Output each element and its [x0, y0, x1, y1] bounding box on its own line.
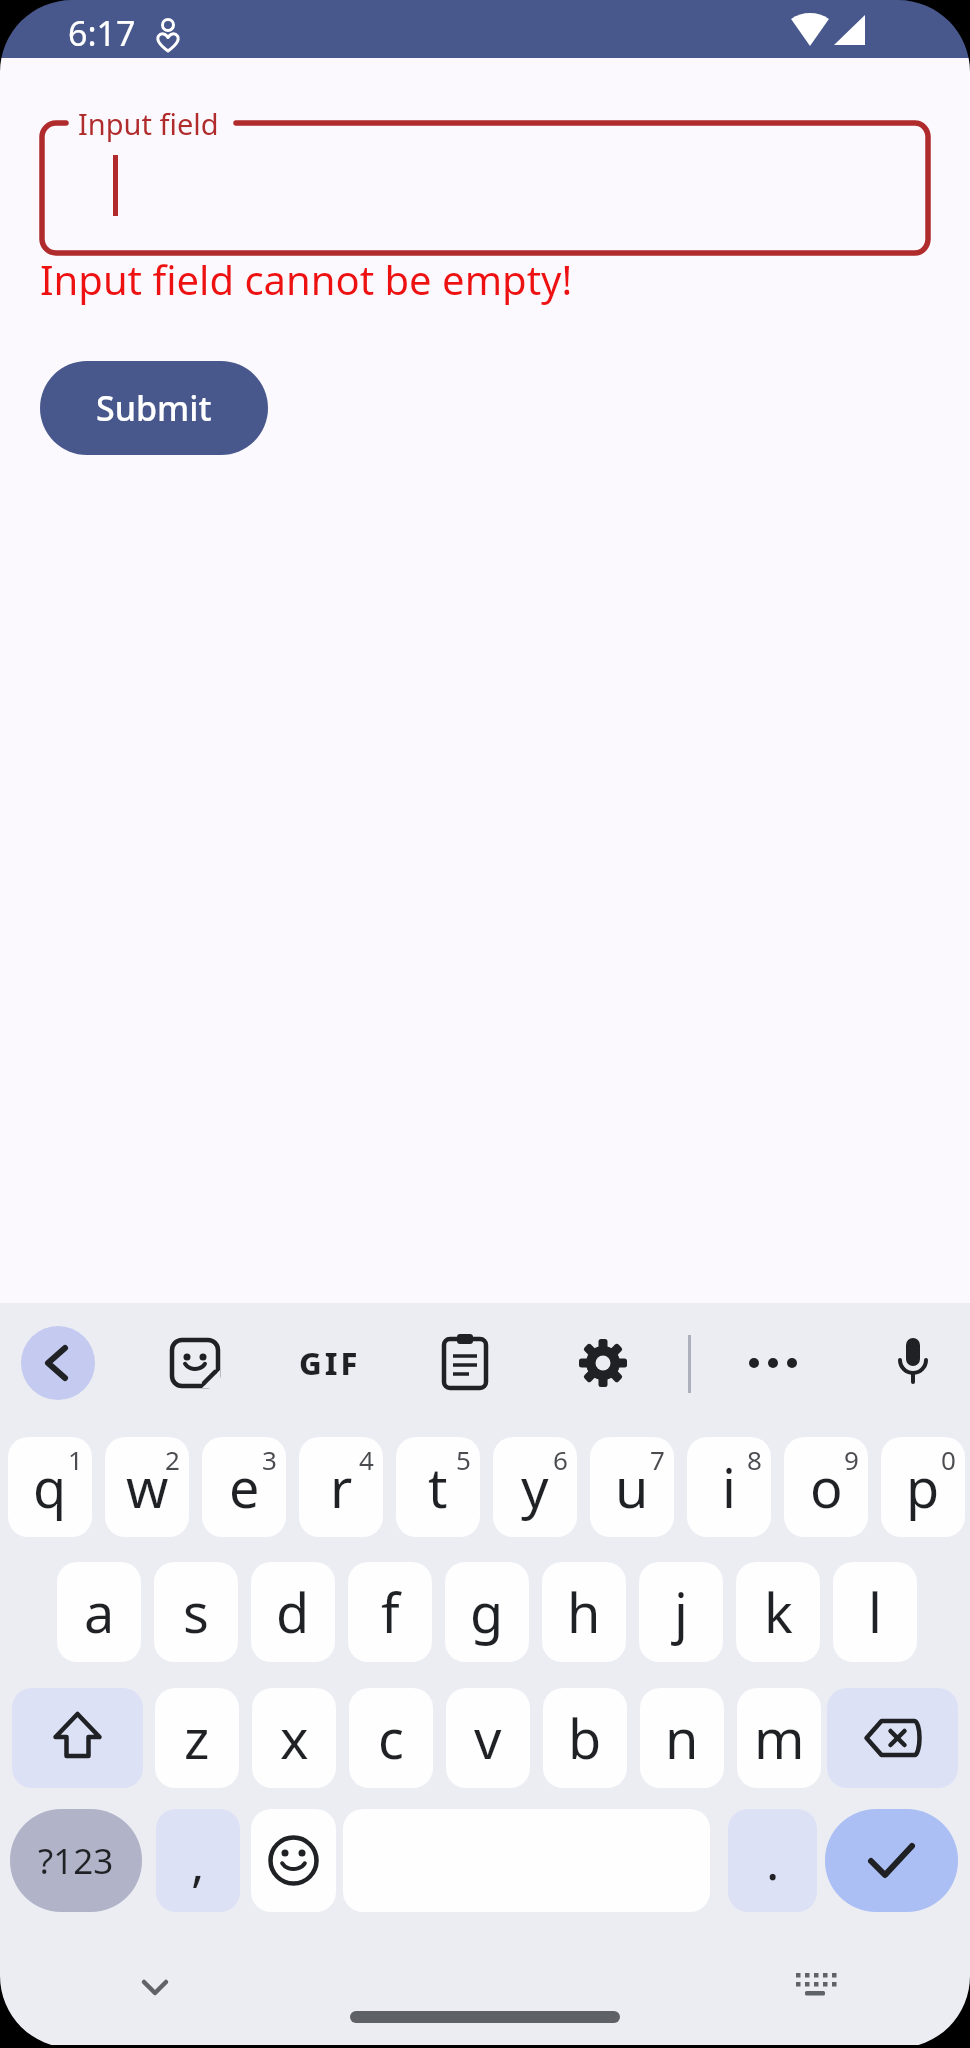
staticText: 5 [456, 1442, 471, 1477]
staticText: Input field cannot be empty! [40, 252, 573, 306]
staticText: n [665, 1701, 699, 1775]
button[interactable]: n [640, 1688, 724, 1788]
staticText: l [868, 1575, 882, 1649]
staticText: p [906, 1450, 940, 1524]
button[interactable]: c [349, 1688, 433, 1788]
staticText: ?123 [38, 1837, 114, 1885]
staticText: . [766, 1827, 780, 1895]
staticText: r [330, 1450, 353, 1524]
staticText: u [615, 1450, 649, 1524]
button[interactable]: . [728, 1809, 817, 1912]
button[interactable]: u [590, 1437, 674, 1537]
button[interactable] [21, 1326, 95, 1400]
staticText: k [764, 1575, 793, 1649]
staticText: s [183, 1575, 209, 1649]
button[interactable] [876, 1326, 950, 1400]
staticText: 4 [359, 1442, 374, 1477]
button[interactable] [566, 1326, 640, 1400]
staticText: j [674, 1575, 688, 1649]
staticText: g [470, 1575, 504, 1649]
button[interactable]: , [156, 1809, 240, 1912]
button[interactable]: q [8, 1437, 92, 1537]
staticText: t [428, 1450, 448, 1524]
staticText: q [33, 1450, 67, 1524]
button[interactable]: r [299, 1437, 383, 1537]
staticText: d [276, 1575, 310, 1649]
staticText: e [229, 1450, 260, 1524]
staticText: GIF [299, 1342, 361, 1384]
button[interactable]: a [57, 1562, 141, 1662]
staticText: x [280, 1701, 309, 1775]
staticText: 6 [553, 1442, 568, 1477]
staticText: w [126, 1450, 169, 1524]
staticText: 3 [262, 1442, 277, 1477]
button[interactable]: g [445, 1562, 529, 1662]
button[interactable] [12, 1688, 143, 1788]
staticText: , [191, 1829, 205, 1897]
button[interactable]: f [348, 1562, 432, 1662]
button[interactable]: z [155, 1688, 239, 1788]
button[interactable] [251, 1809, 336, 1912]
staticText: b [568, 1701, 602, 1775]
button[interactable]: x [252, 1688, 336, 1788]
staticText: z [184, 1701, 210, 1775]
button[interactable]: d [251, 1562, 335, 1662]
button[interactable]: Submit [40, 361, 268, 455]
staticText: Submit [96, 385, 212, 431]
button[interactable] [827, 1688, 958, 1788]
button[interactable]: v [446, 1688, 530, 1788]
staticText: m [754, 1701, 805, 1775]
button[interactable]: o [784, 1437, 868, 1537]
button[interactable]: h [542, 1562, 626, 1662]
button[interactable]: b [543, 1688, 627, 1788]
button[interactable]: s [154, 1562, 238, 1662]
staticText: h [567, 1575, 601, 1649]
staticText: 0 [941, 1442, 956, 1477]
staticText: a [84, 1575, 115, 1649]
button[interactable]: j [639, 1562, 723, 1662]
button[interactable] [428, 1326, 502, 1400]
button[interactable]: k [736, 1562, 820, 1662]
staticText: Input field [78, 104, 219, 143]
button[interactable] [118, 1949, 192, 2023]
button[interactable]: y [493, 1437, 577, 1537]
staticText: 2 [165, 1442, 180, 1477]
staticText: v [474, 1701, 502, 1775]
button[interactable]: e [202, 1437, 286, 1537]
staticText: o [810, 1450, 843, 1524]
button[interactable]: w [105, 1437, 189, 1537]
button[interactable]: t [396, 1437, 480, 1537]
button[interactable]: p [881, 1437, 965, 1537]
staticText: f [381, 1575, 400, 1649]
button[interactable] [736, 1326, 810, 1400]
button[interactable]: ?123 [10, 1809, 142, 1912]
staticText: y [521, 1450, 549, 1524]
staticText: i [722, 1450, 736, 1524]
button[interactable] [825, 1809, 958, 1912]
button[interactable] [777, 1947, 851, 2021]
button[interactable] [158, 1326, 232, 1400]
button[interactable]: GIF [293, 1326, 367, 1400]
staticText: 7 [650, 1442, 665, 1477]
staticText: 9 [844, 1442, 859, 1477]
button[interactable] [40, 121, 930, 255]
staticText: c [378, 1701, 404, 1775]
staticText: 1 [68, 1442, 83, 1477]
button[interactable]: l [833, 1562, 917, 1662]
button[interactable]: i [687, 1437, 771, 1537]
staticText: 8 [747, 1442, 762, 1477]
staticText: 6:17 [68, 10, 136, 56]
button[interactable]: m [737, 1688, 821, 1788]
